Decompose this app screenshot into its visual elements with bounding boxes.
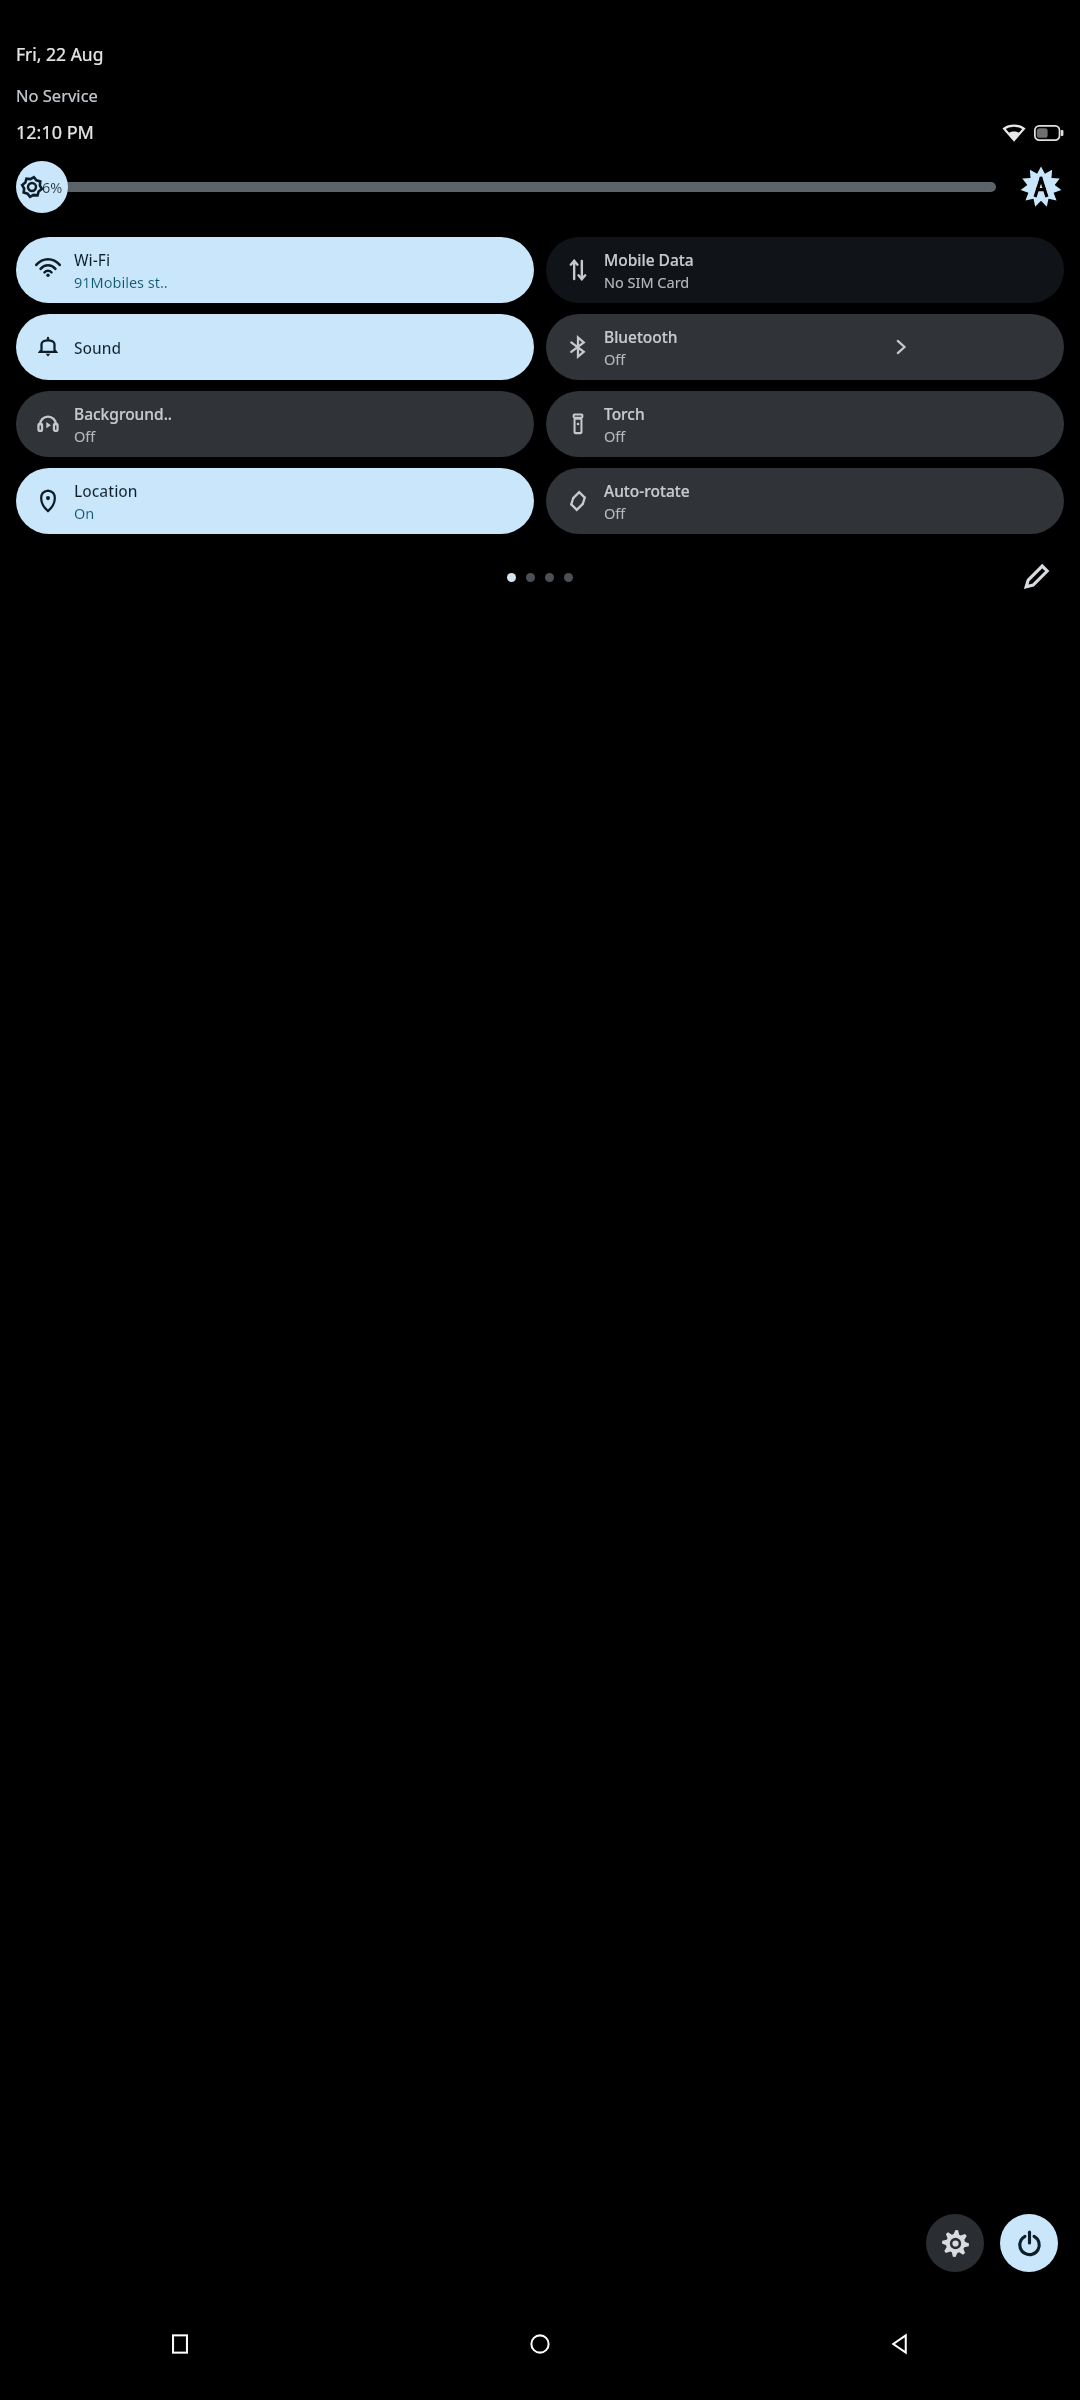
staticText: Sound xyxy=(74,337,122,358)
staticText: 12:10 PM xyxy=(16,120,94,145)
button[interactable]: Power xyxy=(1000,2214,1058,2272)
staticText: Bluetooth xyxy=(604,326,678,347)
button[interactable] xyxy=(526,573,535,582)
staticText: Off xyxy=(604,426,626,446)
button[interactable]: Sound xyxy=(16,314,534,380)
staticText: Wi-Fi xyxy=(74,249,111,270)
staticText: Fri, 22 Aug xyxy=(16,42,104,66)
staticText: Background.. xyxy=(74,403,173,424)
staticText: Off xyxy=(604,349,626,369)
button[interactable]: Home xyxy=(360,2316,720,2372)
staticText: Mobile Data xyxy=(604,249,694,270)
button[interactable] xyxy=(507,573,516,582)
staticText: No SIM Card xyxy=(604,272,690,292)
button[interactable]: Auto-rotate xyxy=(546,468,1064,534)
button[interactable]: Wi-Fi xyxy=(16,237,534,303)
button[interactable]: 6% xyxy=(16,161,996,213)
staticText: No Service xyxy=(16,84,98,106)
button[interactable]: Torch xyxy=(546,391,1064,457)
button[interactable]: Auto brightness xyxy=(1018,164,1064,210)
button[interactable]: Mobile Data xyxy=(546,237,1064,303)
staticText: Off xyxy=(604,503,626,523)
staticText: Location xyxy=(74,480,138,501)
staticText: Torch xyxy=(604,403,645,424)
staticText: Off xyxy=(74,426,96,446)
staticText: 6% xyxy=(42,177,63,197)
staticText: On xyxy=(74,503,95,523)
staticText: Auto-rotate xyxy=(604,480,690,501)
button[interactable]: Back xyxy=(720,2316,1080,2372)
button[interactable]: Background.. xyxy=(16,391,534,457)
button[interactable]: Location xyxy=(16,468,534,534)
staticText: 91Mobiles st.. xyxy=(74,272,168,292)
button[interactable] xyxy=(545,573,554,582)
button[interactable]: Recents xyxy=(0,2316,360,2372)
button[interactable]: Settings xyxy=(926,2214,984,2272)
button[interactable] xyxy=(564,573,573,582)
button[interactable]: Edit tiles xyxy=(1016,557,1056,597)
button[interactable]: Bluetooth xyxy=(546,314,1064,380)
